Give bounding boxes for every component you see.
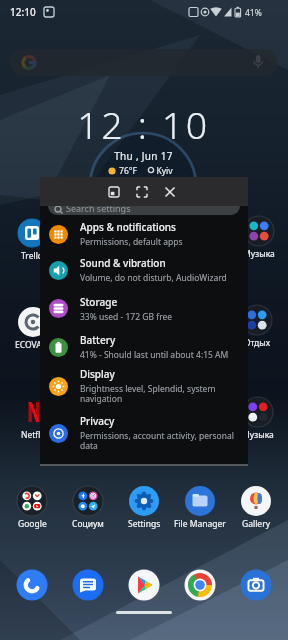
button[interactable] — [157, 177, 183, 206]
staticText: 33% used - 172 GB free — [80, 311, 173, 323]
staticText: File Manager — [174, 518, 226, 530]
staticText: Google — [18, 518, 47, 530]
staticText: Социум — [72, 518, 104, 530]
button[interactable] — [71, 568, 105, 602]
staticText: Privacy — [80, 414, 115, 428]
button[interactable] — [101, 177, 127, 206]
staticText: Gallery — [242, 518, 270, 530]
staticText: Settings — [128, 518, 161, 530]
button[interactable] — [129, 177, 155, 206]
staticText: Sound & vibration — [80, 256, 166, 270]
staticText: ECOVACS — [15, 339, 52, 351]
staticText: Thu , Jun 17 — [114, 149, 173, 163]
staticText: Storage — [80, 295, 118, 309]
button[interactable]: Sound & vibration — [40, 251, 248, 289]
button[interactable]: Google — [4, 484, 60, 530]
button[interactable] — [15, 568, 49, 602]
button[interactable]: Музыка — [231, 214, 287, 260]
button[interactable]: Settings — [116, 484, 172, 530]
staticText: Display — [80, 367, 115, 381]
button[interactable] — [239, 568, 273, 602]
staticText: Battery — [80, 333, 116, 347]
button[interactable]: Социум — [60, 484, 116, 530]
staticText: Apps & notifications — [80, 220, 176, 234]
button[interactable]: Privacy — [40, 409, 248, 457]
button[interactable]: Netflix — [6, 395, 62, 441]
button[interactable] — [10, 49, 278, 76]
button[interactable] — [116, 611, 172, 614]
staticText: Search settings — [66, 202, 131, 214]
staticText: 76°F — [119, 165, 137, 177]
staticText: Trello — [21, 250, 43, 262]
button[interactable]: Apps & notifications — [40, 215, 248, 253]
staticText: Отдых — [244, 337, 271, 349]
staticText: Volume, do not disturb, AudioWizard — [80, 272, 227, 284]
button[interactable]: File Manager — [172, 484, 228, 530]
staticText: 41% - Should last until about 4:15 AM — [80, 349, 229, 361]
staticText: 12 : 10 — [77, 99, 210, 150]
staticText: Permissions, default apps — [80, 236, 183, 248]
button[interactable]: Display — [40, 362, 248, 410]
button[interactable]: Storage — [40, 289, 248, 328]
button[interactable]: ECOVACS — [5, 305, 61, 351]
staticText: Permissions, account activity, personal … — [80, 430, 234, 452]
button[interactable]: Gallery — [228, 484, 284, 530]
staticText: Музыка — [242, 429, 274, 441]
button[interactable] — [127, 568, 161, 602]
button[interactable]: Trello — [4, 216, 60, 262]
button[interactable]: Отдых — [229, 303, 285, 349]
button[interactable]: Battery — [40, 328, 248, 366]
staticText: Netflix — [21, 429, 48, 441]
staticText: 41% — [245, 7, 262, 19]
staticText: 12:10 — [10, 5, 36, 19]
staticText: Kyiv — [156, 165, 173, 177]
staticText: Brightness level, Splendid, system navig… — [80, 383, 216, 405]
button[interactable] — [183, 568, 217, 602]
staticText: Музыка — [243, 248, 275, 260]
button[interactable]: Музыка — [230, 395, 286, 441]
button[interactable]: Search settings — [48, 197, 240, 215]
